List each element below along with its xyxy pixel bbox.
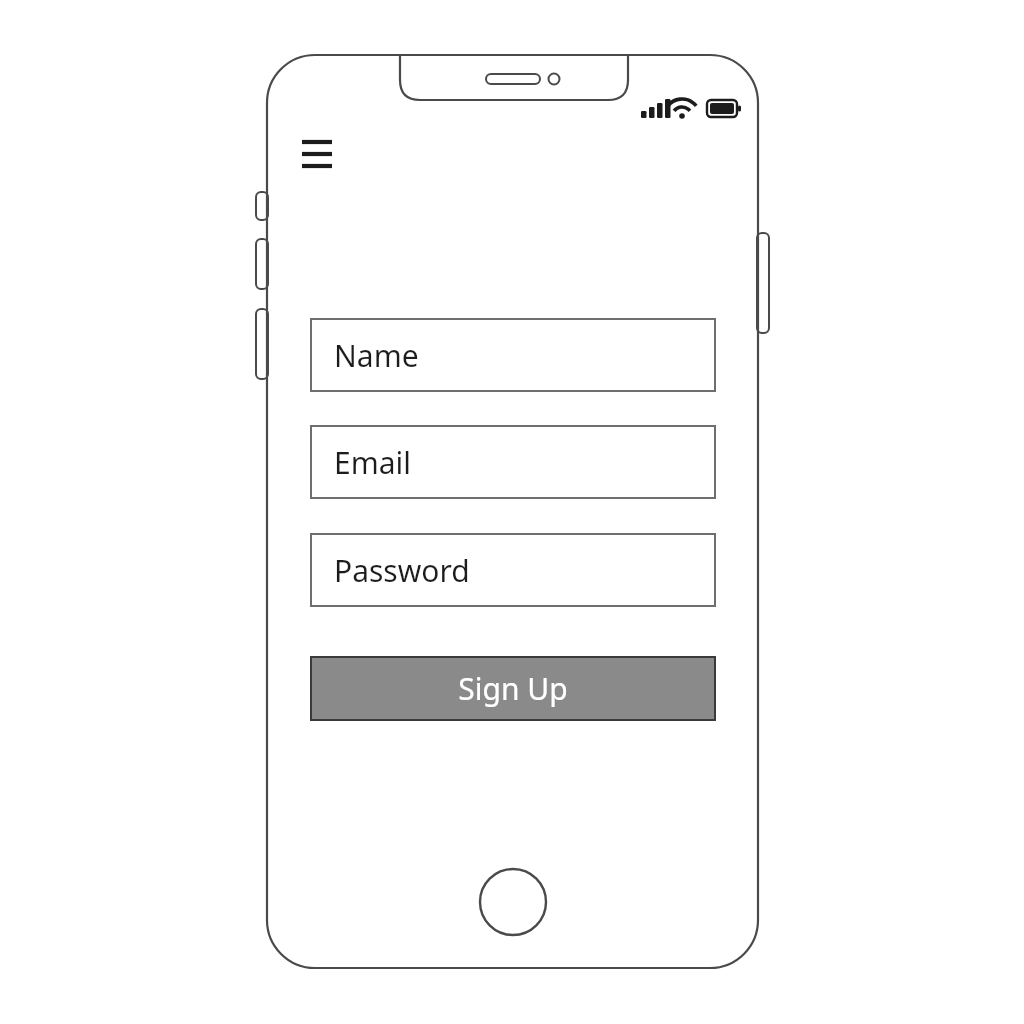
button[interactable]: Sign Up <box>312 658 714 719</box>
staticText: Email <box>334 442 412 483</box>
button[interactable]: Name <box>312 320 714 390</box>
staticText: Password <box>334 550 470 591</box>
staticText: Name <box>334 335 419 376</box>
button[interactable]: Open navigation menu <box>294 132 340 176</box>
button[interactable]: Password <box>312 535 714 605</box>
button[interactable]: Email <box>312 427 714 497</box>
staticText: Sign Up <box>458 668 568 709</box>
